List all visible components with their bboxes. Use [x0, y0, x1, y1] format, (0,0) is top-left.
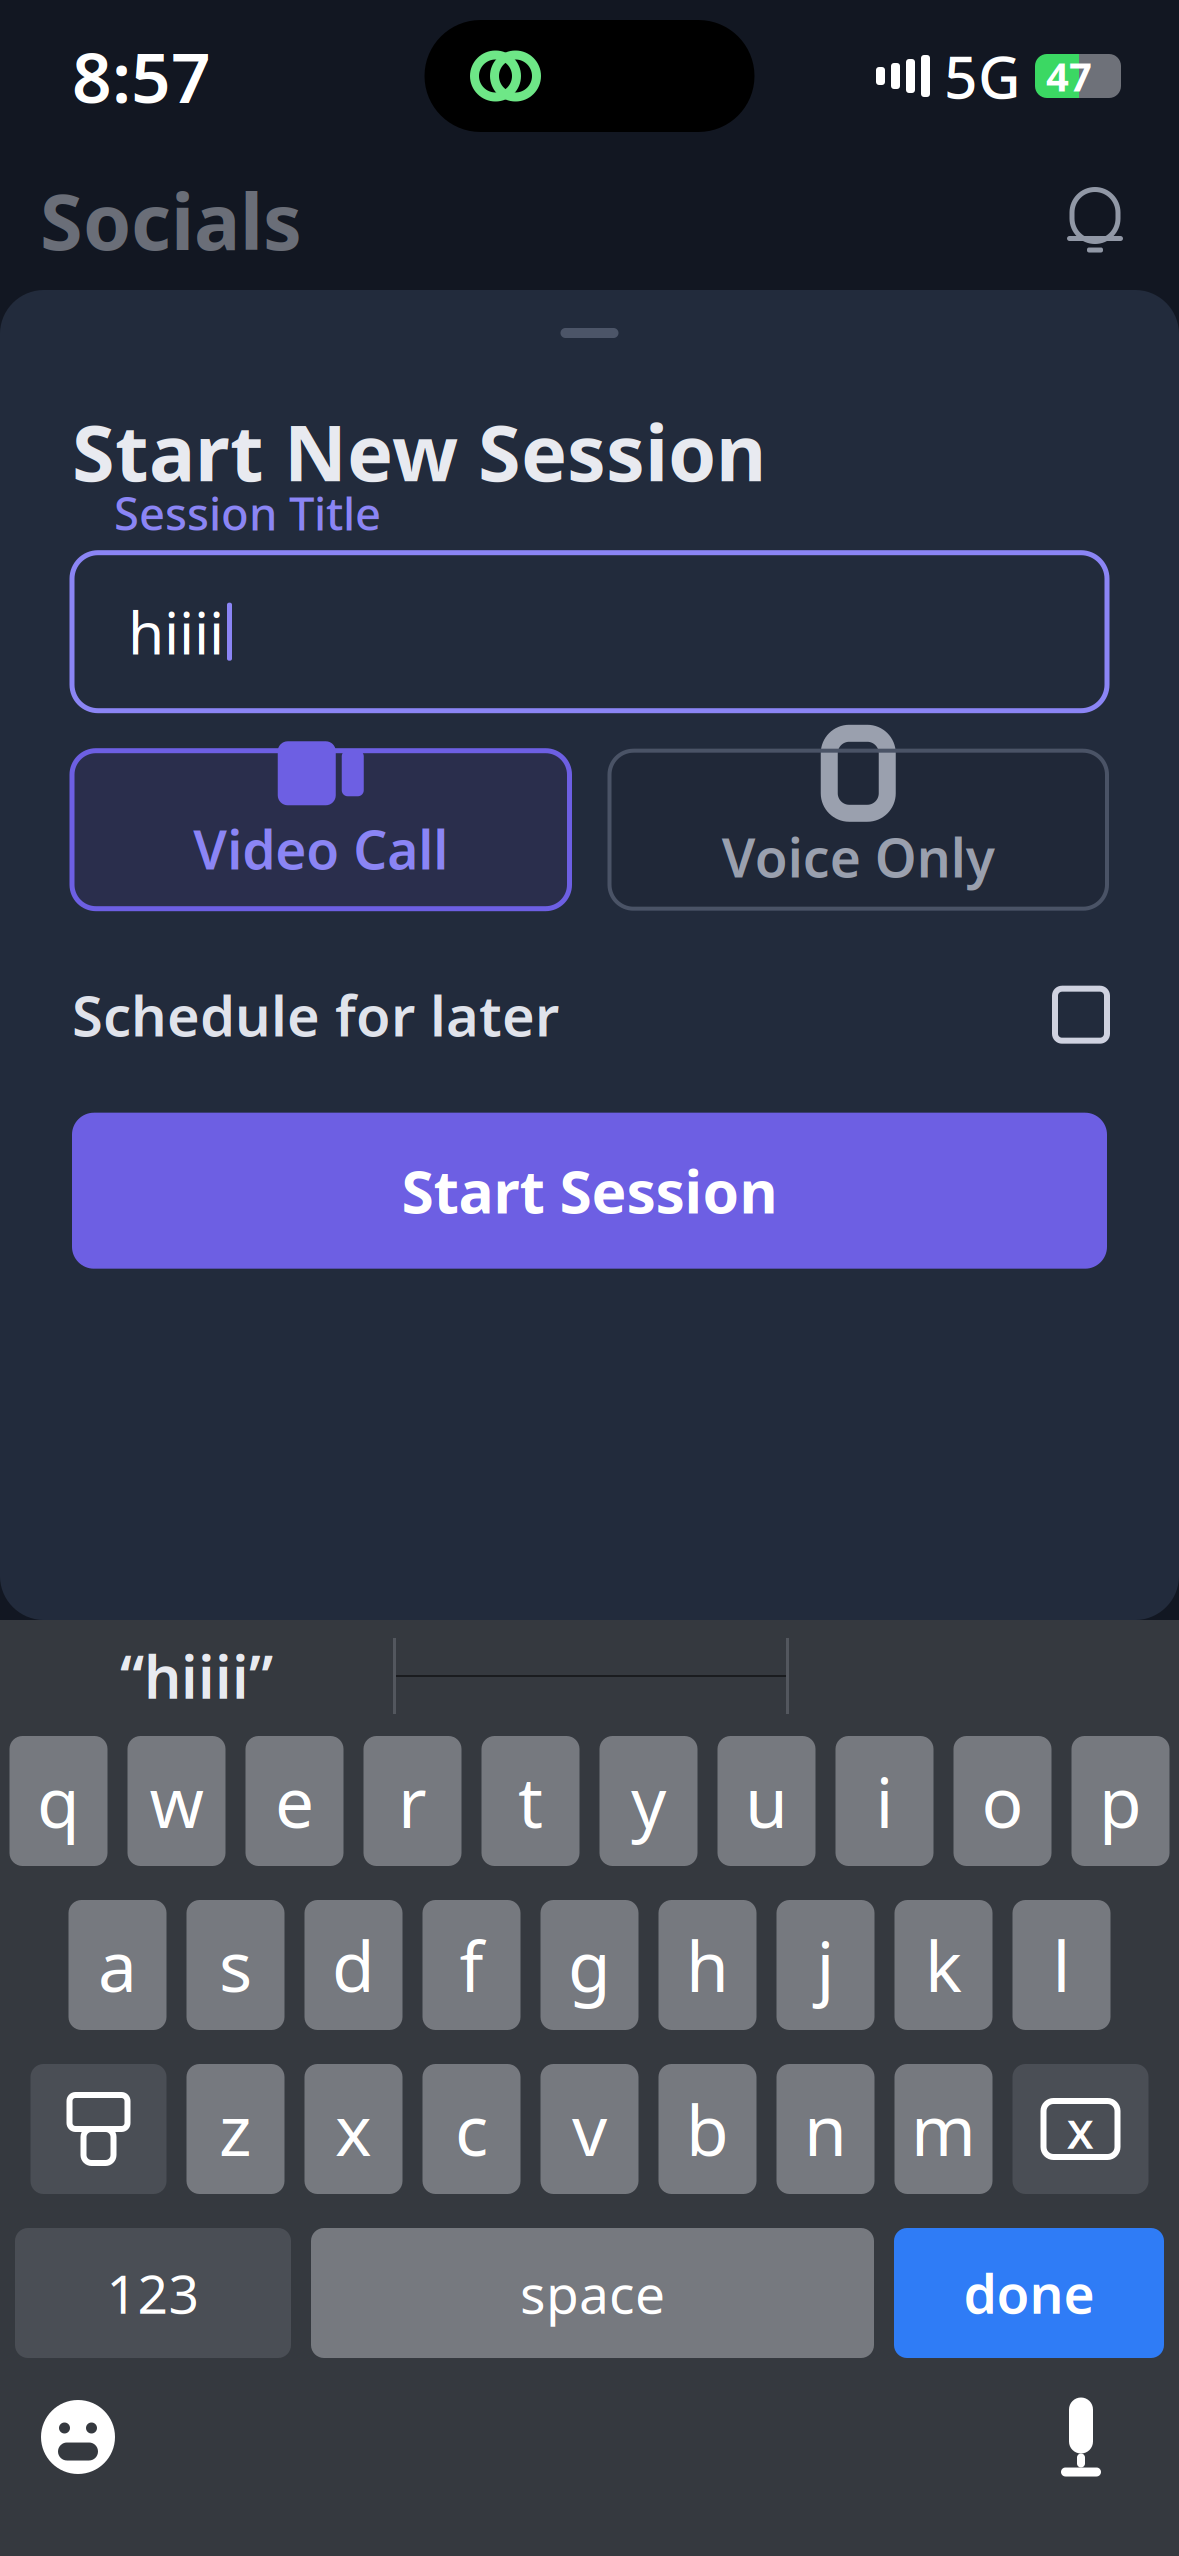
staticText: j [816, 1919, 834, 2011]
staticText: x [335, 2083, 372, 2175]
staticText: g [568, 1919, 611, 2011]
button[interactable]: a [68, 1900, 166, 2030]
staticText: hiiii [128, 593, 224, 671]
staticText: Socials [40, 169, 302, 271]
button[interactable]: w [127, 1736, 225, 1866]
button[interactable]: Shift [30, 2064, 166, 2194]
button[interactable]: space [311, 2228, 874, 2358]
button[interactable]: d [304, 1900, 402, 2030]
staticText: Schedule for later [72, 977, 559, 1052]
staticText: r [398, 1755, 427, 1847]
staticText: done [963, 2258, 1094, 2328]
button[interactable]: b [658, 2064, 756, 2194]
button[interactable]: n [776, 2064, 874, 2194]
staticText: d [332, 1919, 375, 2011]
button[interactable]: k [894, 1900, 992, 2030]
button[interactable]: r [363, 1736, 461, 1866]
button[interactable]: g [540, 1900, 638, 2030]
button[interactable]: e [245, 1736, 343, 1866]
staticText: Video Call [193, 813, 448, 884]
staticText: h [686, 1919, 729, 2011]
staticText: v [572, 2083, 607, 2175]
staticText: Start Session [401, 1152, 777, 1230]
button[interactable]: m [894, 2064, 992, 2194]
button[interactable]: s [186, 1900, 284, 2030]
staticText: l [1052, 1919, 1070, 2011]
staticText: “hiiii” [120, 1637, 273, 1715]
staticText: q [37, 1755, 80, 1847]
staticText: p [1099, 1755, 1142, 1847]
staticText: 5G [944, 37, 1021, 115]
button[interactable]: v [540, 2064, 638, 2194]
staticText: m [911, 2083, 976, 2175]
staticText: Session Title [114, 483, 381, 543]
button[interactable]: Notifications [1055, 182, 1135, 258]
button[interactable]: c [422, 2064, 520, 2194]
staticText: s [219, 1919, 252, 2011]
staticText: x [1066, 2095, 1094, 2163]
button[interactable]: Voice Only [609, 751, 1107, 909]
staticText: n [804, 2083, 847, 2175]
button[interactable]: f [422, 1900, 520, 2030]
button[interactable]: j [776, 1900, 874, 2030]
staticText: c [455, 2083, 488, 2175]
staticText: z [219, 2083, 252, 2175]
button[interactable]: Emoji [38, 2397, 118, 2477]
staticText: 123 [106, 2258, 199, 2328]
button[interactable]: h [658, 1900, 756, 2030]
button[interactable]: u [717, 1736, 815, 1866]
staticText: w [149, 1755, 203, 1847]
staticText: y [631, 1755, 666, 1847]
button[interactable]: z [186, 2064, 284, 2194]
staticText: o [981, 1755, 1023, 1847]
staticText: e [275, 1755, 314, 1847]
button[interactable]: Dictation [1041, 2392, 1121, 2482]
staticText: f [459, 1919, 483, 2011]
staticText: 47 [1046, 49, 1092, 102]
button[interactable]: x [304, 2064, 402, 2194]
staticText: Voice Only [722, 821, 995, 892]
button[interactable]: q [9, 1736, 107, 1866]
staticText: a [98, 1919, 137, 2011]
button[interactable]: Schedule for later [72, 967, 1107, 1063]
button[interactable]: Start Session [72, 1113, 1107, 1269]
staticText: t [518, 1755, 543, 1847]
button[interactable]: p [1071, 1736, 1169, 1866]
button[interactable]: y [599, 1736, 697, 1866]
staticText: space [520, 2258, 665, 2328]
button[interactable]: done [894, 2228, 1164, 2358]
staticText: Start New Session [72, 400, 766, 503]
button[interactable]: i [835, 1736, 933, 1866]
staticText: 8:57 [72, 30, 211, 122]
staticText: u [745, 1755, 788, 1847]
button[interactable]: Video Call [72, 751, 569, 909]
button[interactable]: t [481, 1736, 579, 1866]
staticText: i [875, 1755, 893, 1847]
button[interactable]: o [953, 1736, 1051, 1866]
button[interactable]: l [1012, 1900, 1110, 2030]
button[interactable]: Delete [1012, 2064, 1148, 2194]
button[interactable]: 123 [15, 2228, 291, 2358]
staticText: k [925, 1919, 962, 2011]
staticText: b [686, 2083, 729, 2175]
